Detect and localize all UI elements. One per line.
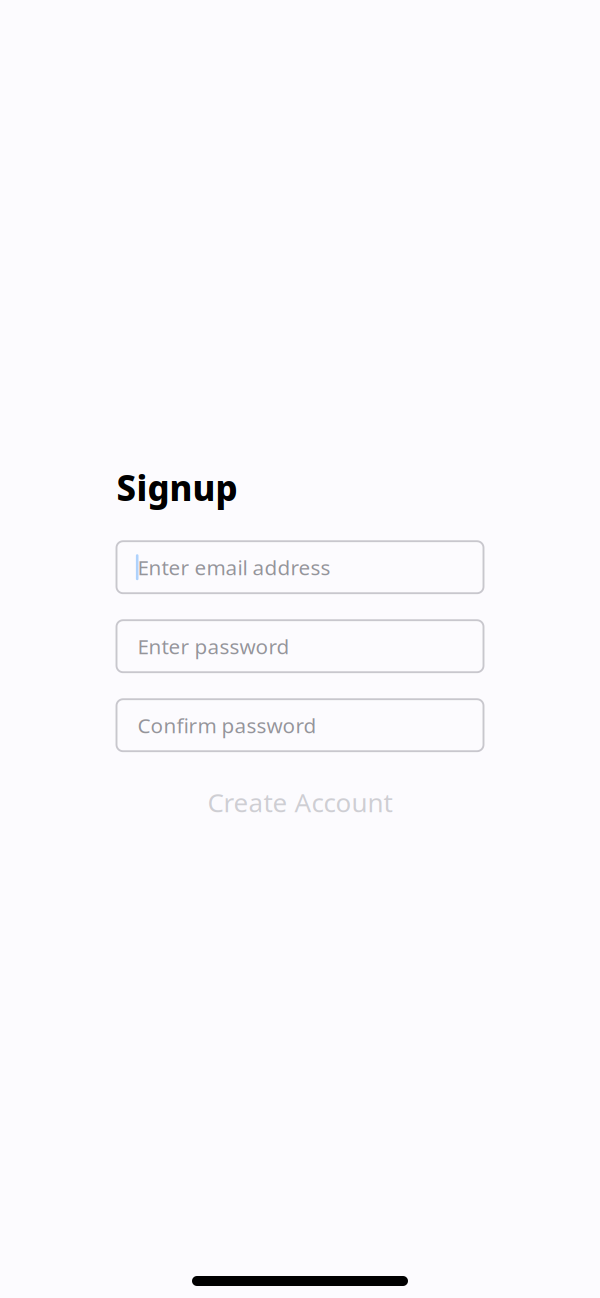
staticText: Signup bbox=[116, 464, 237, 511]
staticText: Enter password bbox=[137, 632, 289, 660]
staticText: Confirm password bbox=[137, 711, 316, 739]
button[interactable]: Enter password bbox=[116, 620, 483, 672]
button[interactable]: Create Account bbox=[116, 789, 483, 815]
staticText: Create Account bbox=[207, 784, 392, 820]
button[interactable]: Confirm password bbox=[116, 699, 483, 751]
staticText: Enter email address bbox=[137, 553, 330, 581]
button[interactable]: Enter email address bbox=[116, 541, 483, 593]
